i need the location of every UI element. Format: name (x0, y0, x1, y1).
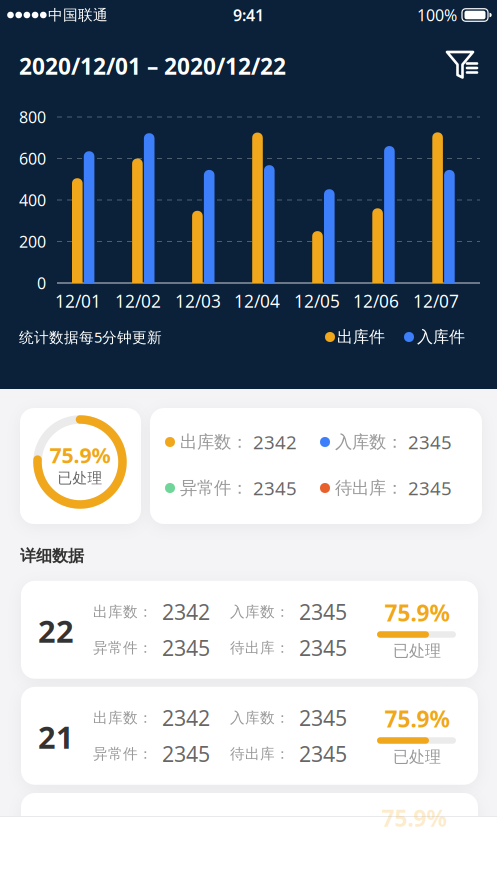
staticText: 出库数： (93, 603, 153, 621)
button[interactable]: 21 (21, 687, 478, 785)
staticText: 异常件： (93, 745, 153, 763)
staticText: 2342 (162, 598, 210, 626)
staticText: 12/07 (413, 289, 459, 312)
staticText: 入库件 (417, 327, 465, 347)
staticText: 75.9% (384, 704, 449, 734)
staticText: 600 (19, 148, 46, 169)
staticText: 2345 (408, 430, 452, 454)
staticText: 待出库： (335, 477, 403, 499)
staticText: 2020/12/01 – 2020/12/22 (19, 51, 286, 81)
staticText: 22 (38, 610, 74, 651)
staticText: 已处理 (393, 641, 441, 661)
staticText: 异常件： (180, 477, 248, 499)
staticText: 出库件 (337, 327, 385, 347)
staticText: 200 (19, 231, 46, 252)
staticText: 2345 (299, 740, 347, 768)
staticText: 12/01 (55, 289, 101, 312)
staticText: 0 (37, 272, 46, 294)
button[interactable]: 22 (21, 581, 478, 679)
staticText: 2345 (162, 634, 210, 662)
staticText: 75.9% (384, 598, 449, 628)
staticText: 统计数据每5分钟更新 (19, 327, 162, 347)
staticText: 已处理 (57, 469, 102, 487)
staticText: 异常件： (93, 639, 153, 657)
staticText: 12/02 (115, 289, 161, 312)
staticText: 800 (19, 106, 46, 128)
staticText: 入库数： (230, 709, 290, 727)
staticText: 2345 (408, 476, 452, 500)
button[interactable]: 筛选 (0, 0, 497, 883)
staticText: 入库数： (230, 603, 290, 621)
staticText: 详细数据 (20, 546, 84, 566)
staticText: 待出库： (230, 745, 290, 763)
staticText: 2345 (299, 704, 347, 732)
staticText: 已处理 (393, 747, 441, 767)
staticText: 9:41 (233, 4, 264, 26)
staticText: 12/04 (234, 289, 280, 312)
staticText: 出库数： (180, 431, 248, 453)
staticText: 中国联通 (48, 6, 108, 24)
staticText: 100% (417, 4, 457, 26)
staticText: 12/05 (294, 289, 340, 312)
staticText: 12/03 (175, 289, 221, 312)
staticText: 2345 (299, 634, 347, 662)
staticText: 2345 (253, 476, 297, 500)
staticText: 2342 (253, 430, 297, 454)
staticText: 入库数： (335, 431, 403, 453)
staticText: 2345 (299, 598, 347, 626)
staticText: 待出库： (230, 639, 290, 657)
staticText: 75.9% (381, 803, 446, 833)
staticText: 400 (19, 189, 46, 211)
staticText: 75.9% (49, 441, 110, 469)
staticText: 出库数： (93, 709, 153, 727)
staticText: 2345 (162, 740, 210, 768)
staticText: 12/06 (353, 289, 399, 312)
staticText: 21 (38, 716, 74, 757)
staticText: 2342 (162, 704, 210, 732)
